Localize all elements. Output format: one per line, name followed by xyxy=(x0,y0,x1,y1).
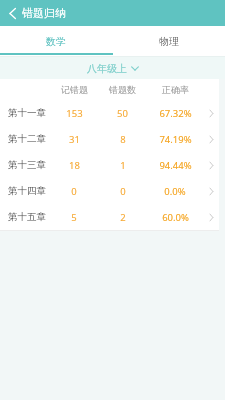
staticText: 18 xyxy=(69,159,80,172)
button[interactable]: 第十五章 xyxy=(0,204,219,230)
staticText: 153 xyxy=(66,107,83,120)
staticText: 2 xyxy=(120,211,126,224)
button[interactable]: 物理 xyxy=(112,26,225,57)
staticText: 60.0% xyxy=(162,211,189,224)
button[interactable]: 第十三章 xyxy=(0,152,219,178)
button[interactable]: Back xyxy=(0,2,74,24)
button[interactable]: 数学 xyxy=(0,26,112,57)
staticText: 94.44% xyxy=(159,159,192,172)
staticText: 八年级上 xyxy=(87,62,127,75)
staticText: 74.19% xyxy=(159,133,192,146)
staticText: 物理 xyxy=(159,35,179,48)
staticText: 0.0% xyxy=(164,185,186,198)
staticText: 8 xyxy=(120,133,126,146)
staticText: 数学 xyxy=(46,35,66,48)
staticText: 正确率 xyxy=(162,84,189,95)
button[interactable]: 第十四章 xyxy=(0,178,219,204)
button[interactable]: 八年级上 xyxy=(77,59,149,78)
staticText: 第十四章 xyxy=(8,185,46,197)
staticText: 记错题 xyxy=(61,84,88,95)
staticText: 31 xyxy=(69,133,80,146)
staticText: 第十一章 xyxy=(8,107,46,119)
staticText: 错题数 xyxy=(109,84,136,95)
staticText: 0 xyxy=(71,185,77,198)
staticText: 5 xyxy=(71,211,77,224)
button[interactable]: 第十一章 xyxy=(0,100,219,126)
staticText: 67.32% xyxy=(159,107,192,120)
button[interactable]: 第十二章 xyxy=(0,126,219,152)
staticText: 1 xyxy=(120,159,126,172)
staticText: 错题归纳 xyxy=(22,6,66,20)
staticText: 第十二章 xyxy=(8,133,46,145)
staticText: 0 xyxy=(120,185,126,198)
staticText: 第十五章 xyxy=(8,211,46,223)
staticText: 第十三章 xyxy=(8,159,46,171)
staticText: 50 xyxy=(117,107,128,120)
